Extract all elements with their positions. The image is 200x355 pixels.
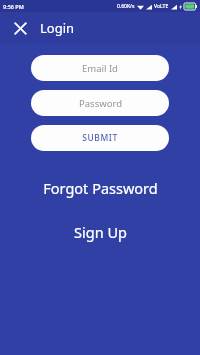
staticText: VoLTE [154, 3, 169, 10]
staticText: Forgot Password [43, 178, 158, 198]
button[interactable]: Password [31, 90, 169, 116]
button[interactable]: Email Id [31, 55, 169, 81]
staticText: Login [40, 19, 75, 37]
staticText: 0.60K/s [117, 3, 135, 10]
staticText: SUBMIT [82, 132, 118, 144]
button[interactable]: Sign Up [0, 221, 200, 243]
button[interactable]: SUBMIT [31, 125, 169, 151]
staticText: Email Id [82, 62, 118, 75]
staticText: Password [79, 97, 122, 110]
staticText: 9:56 PM [3, 3, 24, 10]
staticText: Sign Up [74, 222, 127, 242]
button[interactable]: Forgot Password [0, 177, 200, 199]
button[interactable]: Close [8, 16, 32, 40]
